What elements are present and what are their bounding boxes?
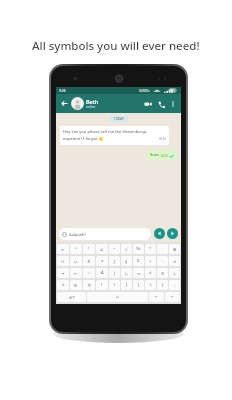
staticText: ←	[74, 271, 78, 276]
staticText: All symbols you will ever need!	[32, 38, 200, 54]
button[interactable]: ←	[149, 292, 164, 302]
button[interactable]: ÷	[109, 244, 120, 254]
button[interactable]: -	[157, 256, 168, 266]
staticText: 0.00K/s	[139, 89, 150, 93]
button[interactable]: ⊔	[87, 292, 148, 302]
staticText: ⊥	[173, 271, 177, 276]
staticText: ‰	[136, 246, 141, 252]
staticText: ≡	[161, 271, 165, 276]
staticText: ≜	[87, 259, 91, 264]
button[interactable]: ←	[70, 268, 82, 278]
button[interactable]: Hey can you please tell me the Heisenber…	[60, 126, 169, 145]
staticText: ÷	[113, 246, 116, 252]
button[interactable]: ∈	[70, 280, 82, 290]
button[interactable]: ≡	[157, 268, 168, 278]
staticText: ∩	[61, 259, 65, 264]
button[interactable]: Beth	[86, 98, 142, 109]
staticText: 06:24	[159, 137, 166, 141]
button[interactable]: ≜	[83, 256, 95, 266]
button[interactable]: Å	[96, 268, 108, 278]
button[interactable]: Sure	[147, 150, 177, 160]
staticText: {	[150, 282, 152, 288]
staticText: +	[149, 258, 152, 264]
button[interactable]: ·	[157, 244, 168, 254]
button[interactable]: ±	[96, 256, 108, 266]
staticText: ∈	[74, 283, 78, 288]
button[interactable]: (	[96, 280, 108, 290]
staticText: (	[101, 282, 103, 288]
button[interactable]: ⊞	[169, 244, 180, 254]
button[interactable]: {	[145, 280, 156, 290]
button[interactable]: )	[109, 280, 120, 290]
button[interactable]: Back	[59, 98, 70, 109]
staticText: -	[162, 258, 164, 264]
button[interactable]: ^	[70, 244, 82, 254]
staticText: ⊔	[116, 295, 119, 299]
staticText: ∀	[88, 283, 91, 288]
button[interactable]: *	[145, 244, 156, 254]
staticText: ≠	[149, 270, 152, 276]
button[interactable]: Call	[155, 98, 167, 110]
button[interactable]: ↵	[165, 292, 180, 302]
button[interactable]: 4/7	[57, 292, 86, 302]
button[interactable]: [	[121, 280, 132, 290]
button[interactable]: ∟	[121, 268, 132, 278]
staticText: 06:25	[161, 154, 168, 158]
button[interactable]: ≈	[133, 268, 144, 278]
staticText: ·	[162, 246, 164, 252]
button[interactable]: ≠	[145, 268, 156, 278]
button[interactable]: ≐	[169, 256, 180, 266]
staticText: ∞	[61, 247, 65, 252]
button[interactable]: }	[157, 280, 168, 290]
staticText: ∟	[125, 271, 129, 276]
button[interactable]: ⌣	[83, 268, 95, 278]
staticText: ±	[101, 258, 104, 264]
staticText: Å	[101, 270, 104, 276]
button[interactable]: ∫	[109, 256, 120, 266]
staticText: ∠	[100, 247, 104, 252]
staticText: )	[114, 282, 116, 288]
staticText: ]	[138, 282, 140, 288]
staticText: online	[86, 105, 96, 109]
button[interactable]: ∩	[57, 256, 69, 266]
staticText: ←	[155, 295, 159, 299]
button[interactable]: √	[121, 244, 132, 254]
staticText: ∫	[113, 259, 116, 264]
staticText: Sure	[150, 152, 159, 158]
staticText: !	[88, 246, 90, 252]
staticText: ⌣	[88, 271, 91, 275]
button[interactable]: !	[83, 244, 95, 254]
button[interactable]: ]	[133, 280, 144, 290]
staticText: Σ	[137, 258, 140, 264]
button[interactable]: More options	[168, 99, 178, 109]
staticText: ⊞	[173, 247, 177, 252]
button[interactable]: Contact photo	[71, 97, 84, 110]
button[interactable]: ∪	[70, 256, 82, 266]
button[interactable]: ∠	[96, 244, 108, 254]
staticText: →	[61, 271, 65, 276]
button[interactable]: ∫	[109, 268, 120, 278]
staticText: ^	[75, 246, 78, 252]
staticText: ΔκΔρ≥ħ/	[69, 232, 86, 237]
button[interactable]: ‰	[133, 244, 144, 254]
staticText: ≠	[62, 282, 65, 288]
staticText: ∫	[113, 271, 116, 276]
button[interactable]: Previous	[154, 228, 165, 239]
staticText: [	[126, 282, 128, 288]
button[interactable]: ⊥	[169, 268, 180, 278]
button[interactable]: ΔκΔρ≥ħ/	[59, 228, 151, 240]
staticText: equation? I forgot	[63, 136, 98, 142]
button[interactable]: ∮	[121, 256, 132, 266]
staticText: Beth	[86, 98, 99, 105]
button[interactable]: →	[57, 268, 69, 278]
button[interactable]: ≠	[57, 280, 69, 290]
button[interactable]: ∀	[83, 280, 95, 290]
button[interactable]: Send	[167, 228, 178, 239]
staticText: ≐	[173, 259, 177, 264]
button[interactable]: Video call	[142, 98, 154, 110]
button[interactable]: ∴	[169, 280, 180, 290]
staticText: √	[125, 247, 128, 252]
button[interactable]: +	[145, 256, 156, 266]
button[interactable]: Σ	[133, 256, 144, 266]
button[interactable]: ∞	[57, 244, 69, 254]
